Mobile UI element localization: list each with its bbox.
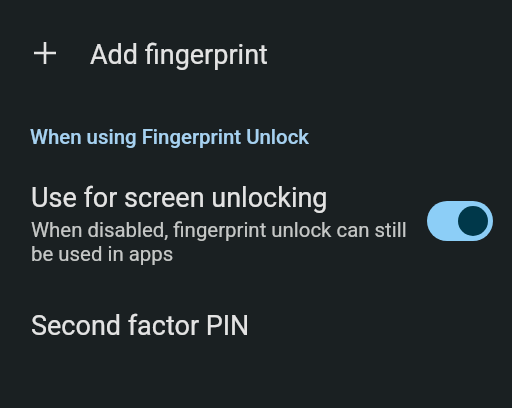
button[interactable]: Add fingerprint <box>22 30 67 75</box>
button[interactable]: Second factor PIN <box>0 276 512 356</box>
staticText: Second factor PIN <box>31 310 250 342</box>
staticText: When using Fingerprint Unlock <box>30 125 309 149</box>
button[interactable]: Use for screen unlocking, on <box>427 201 493 241</box>
staticText: Use for screen unlocking <box>31 182 328 214</box>
button[interactable]: Add fingerprint <box>0 0 512 105</box>
staticText: When disabled, fingerprint unlock can st… <box>31 218 416 266</box>
staticText: Add fingerprint <box>90 39 268 71</box>
button[interactable]: Use for screen unlocking <box>0 152 512 276</box>
